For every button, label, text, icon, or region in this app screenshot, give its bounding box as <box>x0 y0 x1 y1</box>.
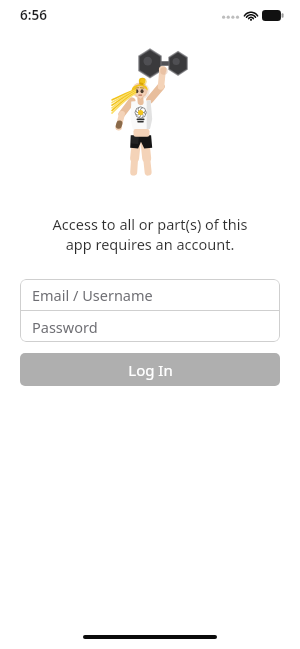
staticText: 6:56 <box>20 6 47 24</box>
button[interactable]: Email / Username <box>20 279 280 310</box>
staticText: Log In <box>128 360 173 380</box>
staticText: Access to all or part(s) of this app req… <box>24 214 276 255</box>
button[interactable]: Log In <box>20 353 280 386</box>
staticText: Password <box>32 317 98 337</box>
button[interactable]: Password <box>20 311 280 342</box>
staticText: Email / Username <box>32 285 153 305</box>
